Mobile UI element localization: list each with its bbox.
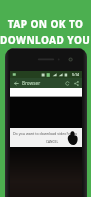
button[interactable]: Back [12,79,20,87]
button[interactable]: Refresh [63,79,71,87]
staticText: TAP ON OK TO START [0,17,91,31]
button[interactable]: OK [67,139,76,145]
button[interactable]: CANCEL [44,139,61,145]
staticText: Browser [22,80,41,86]
staticText: DOWNLOAD YOUR VIDEO [0,33,91,47]
staticText: OK [69,140,74,144]
button[interactable]: Share [72,79,80,87]
staticText: Do you want to download video?video [13,131,78,136]
staticText: CANCEL [46,140,59,144]
staticText: 5:14 [72,72,80,77]
